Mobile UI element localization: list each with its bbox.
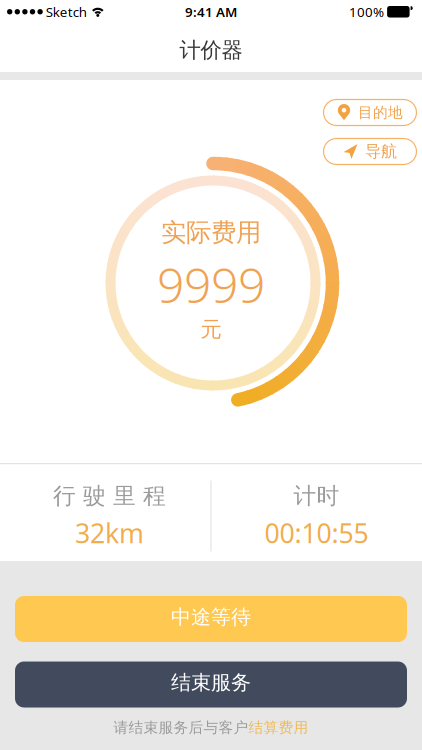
staticText: 实际费用	[161, 217, 261, 248]
button[interactable]: 结束服务	[15, 661, 407, 707]
staticText: 结束服务	[171, 670, 251, 695]
button[interactable]: 目的地	[323, 99, 416, 125]
staticText: 9:41 AM	[185, 3, 237, 21]
button[interactable]: 导航	[323, 138, 416, 164]
staticText: Sketch	[43, 3, 90, 21]
staticText: 请结束服务后与客户	[113, 718, 248, 736]
staticText: 结算费用	[248, 718, 308, 736]
staticText: 元	[200, 316, 221, 343]
staticText: 计价器	[179, 37, 242, 63]
staticText: 导航	[365, 142, 397, 161]
staticText: 32km	[75, 515, 144, 551]
staticText: 行 驶 里 程	[53, 482, 166, 510]
staticText: 中途等待	[171, 605, 251, 629]
staticText: 100%	[349, 3, 387, 21]
staticText: 9999	[157, 253, 265, 316]
staticText: 目的地	[358, 103, 403, 121]
staticText: 00:10:55	[264, 515, 368, 551]
button[interactable]: 中途等待	[15, 596, 407, 642]
staticText: 计时	[293, 482, 339, 510]
